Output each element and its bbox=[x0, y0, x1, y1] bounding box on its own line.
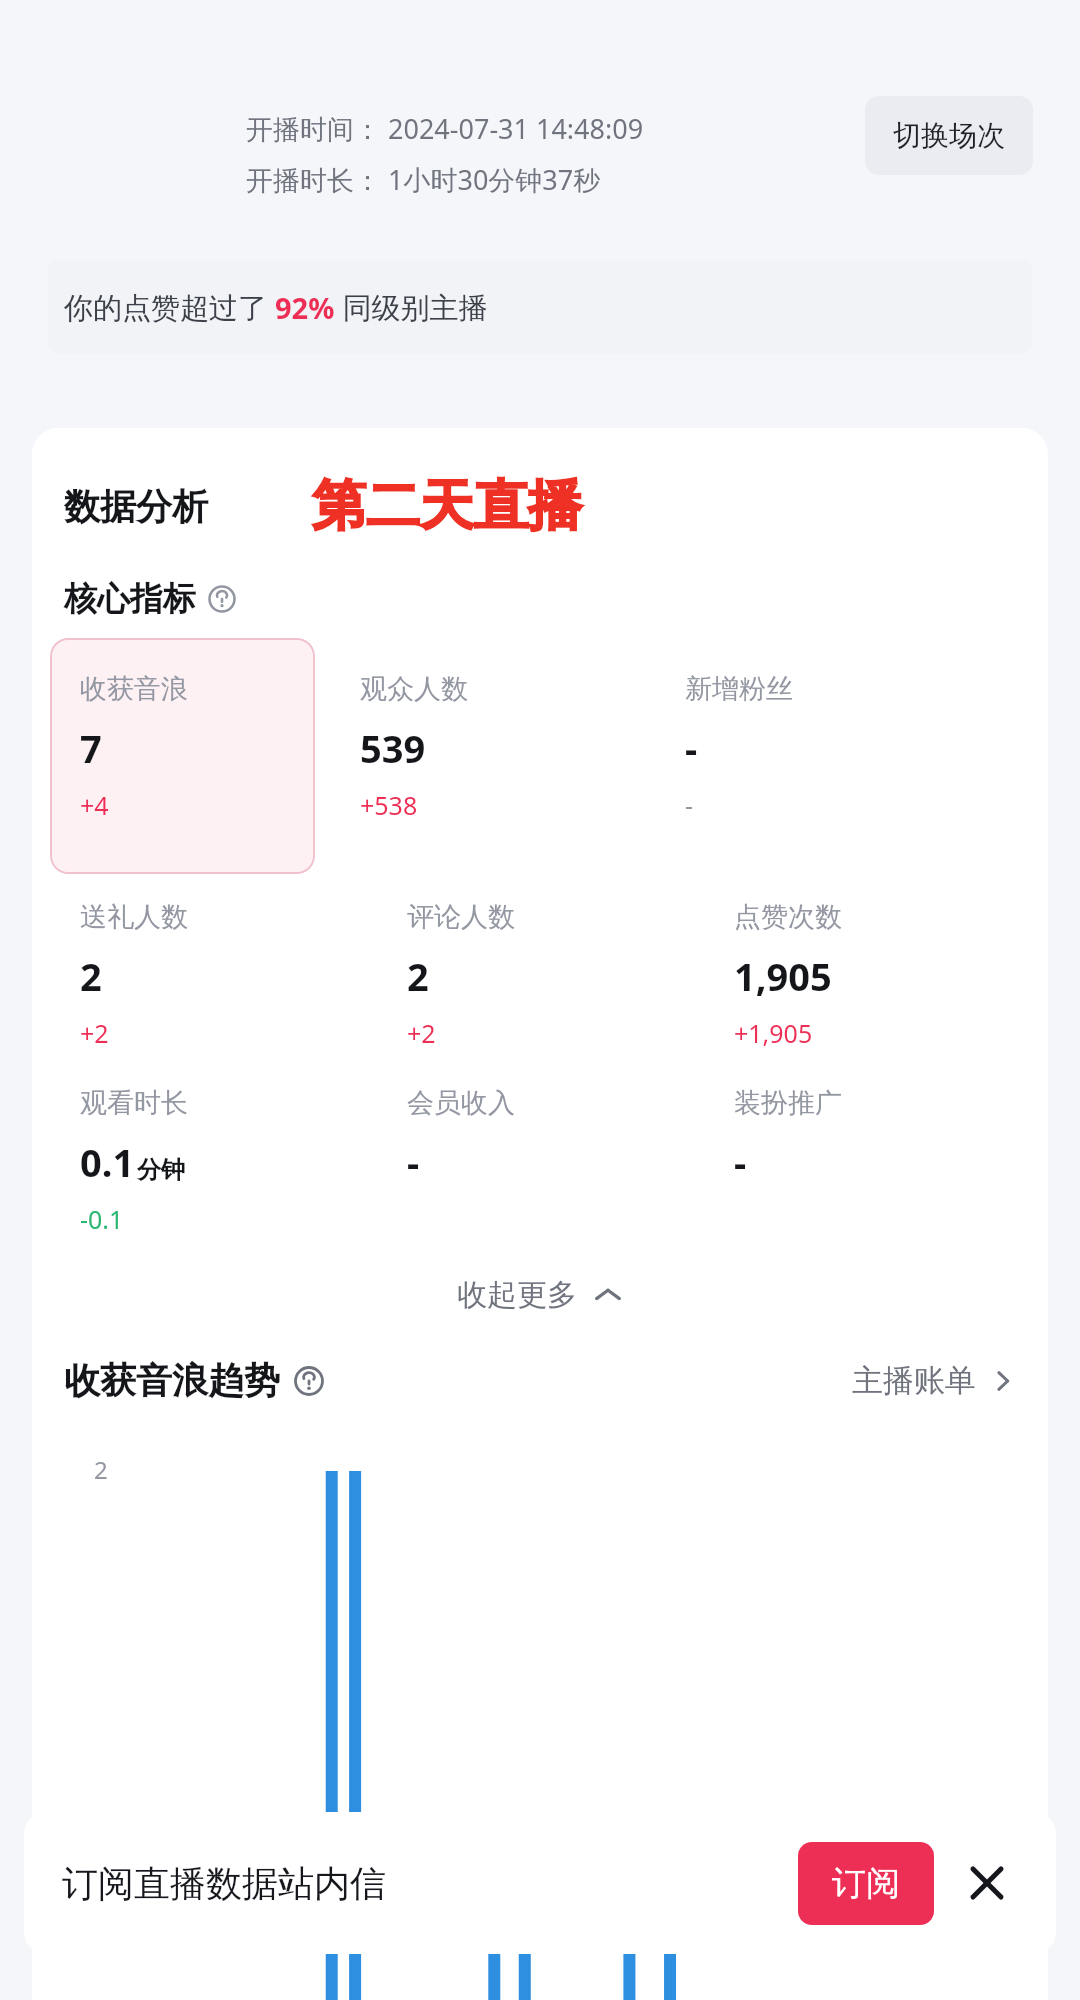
staticText: 评论人数 bbox=[407, 900, 515, 934]
staticText: - bbox=[685, 722, 698, 774]
button[interactable]: 观众人数 bbox=[360, 672, 620, 822]
button[interactable]: 核心指标 bbox=[64, 578, 236, 620]
staticText: +538 bbox=[360, 788, 418, 822]
button[interactable]: 切换场次 bbox=[865, 96, 1033, 175]
staticText: -0.1 bbox=[80, 1202, 124, 1236]
staticText: 观众人数 bbox=[360, 672, 468, 706]
staticText: +1,905 bbox=[734, 1016, 813, 1050]
staticText: 分钟 bbox=[137, 1155, 185, 1185]
staticText: 0.1 bbox=[80, 1136, 135, 1188]
staticText: 2 bbox=[94, 1453, 108, 1486]
staticText: +2 bbox=[80, 1016, 109, 1050]
staticText: 核心指标 bbox=[64, 578, 196, 620]
staticText: 同级别主播 bbox=[335, 287, 488, 327]
button[interactable]: 会员收入 bbox=[407, 1086, 734, 1236]
button[interactable]: 装扮推广 bbox=[734, 1086, 842, 1236]
button[interactable]: 主播账单 bbox=[852, 1361, 1016, 1400]
staticText: 观看时长 bbox=[80, 1086, 188, 1120]
staticText: - bbox=[685, 788, 694, 822]
staticText: 新增粉丝 bbox=[685, 672, 793, 706]
staticText: 2 bbox=[80, 950, 102, 1002]
button[interactable]: 关闭 bbox=[956, 1852, 1018, 1914]
staticText: 539 bbox=[360, 722, 426, 774]
staticText: 92% bbox=[275, 288, 335, 327]
staticText: 装扮推广 bbox=[734, 1086, 842, 1120]
other: 主播账单 bbox=[990, 1368, 1016, 1394]
staticText: 送礼人数 bbox=[80, 900, 188, 934]
staticText: 收起更多 bbox=[457, 1276, 577, 1314]
button[interactable]: 送礼人数 bbox=[80, 900, 407, 1050]
button[interactable]: 新增粉丝 bbox=[685, 672, 925, 822]
other: 收获音浪趋势说明 bbox=[294, 1366, 324, 1396]
button[interactable]: 收获音浪 bbox=[50, 638, 315, 874]
staticText: 收获音浪趋势 bbox=[64, 1358, 280, 1403]
staticText: 开播时间： 2024-07-31 14:48:09 bbox=[246, 110, 644, 147]
other: 核心指标说明 bbox=[208, 585, 236, 613]
button[interactable]: 收起更多 bbox=[32, 1276, 1048, 1314]
staticText: 点赞次数 bbox=[734, 900, 842, 934]
staticText: 订阅直播数据站内信 bbox=[62, 1861, 798, 1906]
staticText: 订阅 bbox=[832, 1862, 900, 1905]
staticText: - bbox=[407, 1136, 420, 1188]
staticText: 主播账单 bbox=[852, 1361, 976, 1400]
staticText: 1,905 bbox=[734, 950, 832, 1002]
staticText: 你的点赞超过了 bbox=[64, 287, 275, 327]
button[interactable]: 你的点赞超过了 bbox=[48, 260, 1032, 354]
staticText: +4 bbox=[80, 788, 109, 822]
button[interactable]: 收获音浪趋势 bbox=[64, 1358, 324, 1403]
staticText: 7 bbox=[80, 722, 102, 774]
staticText: 会员收入 bbox=[407, 1086, 515, 1120]
button[interactable]: 观看时长 bbox=[80, 1086, 407, 1236]
staticText: 2 bbox=[407, 950, 429, 1002]
button[interactable]: 订阅 bbox=[798, 1842, 934, 1925]
staticText: 开播时长： 1小时30分钟37秒 bbox=[246, 161, 601, 198]
staticText: +2 bbox=[407, 1016, 436, 1050]
staticText: - bbox=[734, 1136, 747, 1188]
staticText: 第二天直播 bbox=[312, 472, 582, 540]
button[interactable]: 点赞次数 bbox=[734, 900, 842, 1050]
button[interactable]: 评论人数 bbox=[407, 900, 734, 1050]
staticText: 收获音浪 bbox=[80, 672, 188, 706]
staticText: 切换场次 bbox=[893, 118, 1005, 153]
staticText: 数据分析 bbox=[64, 484, 208, 529]
